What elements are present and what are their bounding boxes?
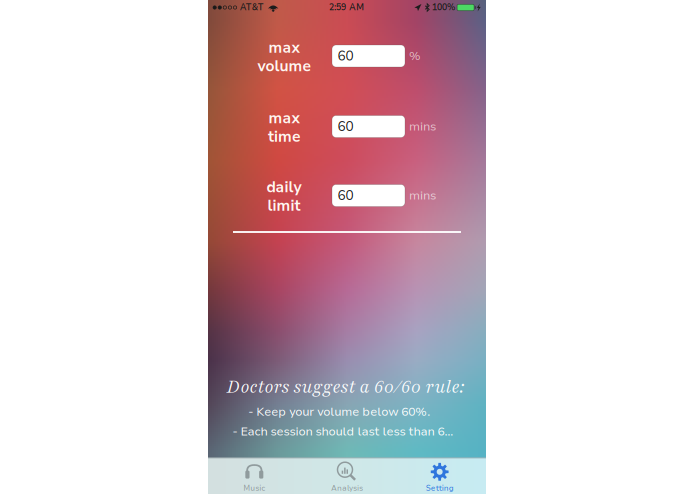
staticText: Doctors suggest a 60/60 rule: (226, 375, 464, 399)
staticText: 2:59 AM (329, 2, 364, 13)
staticText: 100% (432, 2, 455, 13)
staticText: Setting (426, 483, 454, 493)
staticText: - Each session should last less than 6… (232, 423, 453, 440)
staticText: Music (243, 483, 265, 493)
staticText: - Keep your volume below 60%. (248, 403, 430, 420)
staticText: % (409, 48, 421, 64)
button[interactable]: 60 (332, 184, 405, 206)
staticText: Analysis (331, 483, 363, 493)
staticText: AT&T (240, 2, 264, 13)
staticText: daily (266, 177, 301, 198)
staticText: max (268, 37, 299, 58)
staticText: time (268, 126, 300, 147)
staticText: 60 (337, 117, 353, 136)
staticText: volume (257, 56, 310, 77)
button[interactable]: Music (208, 457, 301, 494)
staticText: limit (267, 195, 300, 216)
staticText: 60 (337, 47, 353, 65)
staticText: max (268, 108, 299, 129)
staticText: mins (409, 187, 436, 204)
button[interactable]: Setting (393, 457, 486, 494)
button[interactable]: Analysis (301, 457, 393, 494)
button[interactable]: 60 (332, 115, 405, 137)
staticText: mins (409, 118, 436, 135)
staticText: 60 (337, 186, 353, 205)
button[interactable]: 60 (332, 45, 405, 67)
